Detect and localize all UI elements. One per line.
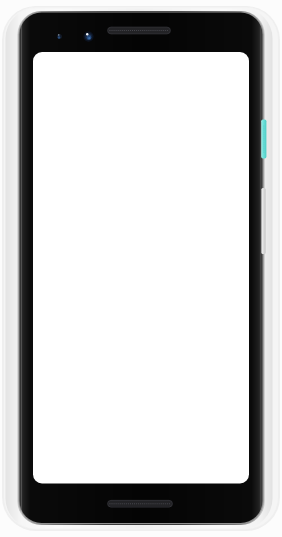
button[interactable]: Power button [258, 117, 269, 161]
button[interactable]: Volume button [258, 186, 269, 256]
button[interactable]: Phone screen [33, 52, 249, 484]
